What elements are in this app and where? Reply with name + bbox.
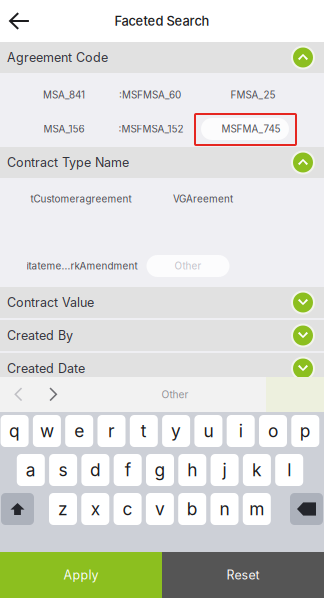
staticText: e [74, 420, 84, 441]
button[interactable]: MSFMA_745 [201, 118, 289, 140]
button[interactable]: n [210, 493, 238, 525]
button[interactable]: o [259, 415, 287, 447]
button[interactable]: Next field [36, 379, 72, 409]
staticText: Reset [226, 567, 259, 582]
staticText: Created Date [7, 361, 85, 376]
button[interactable]: h [178, 454, 206, 486]
staticText: k [252, 459, 262, 480]
staticText: m [249, 498, 264, 519]
button[interactable]: z [49, 493, 77, 525]
staticText: x [91, 498, 100, 519]
staticText: u [203, 420, 213, 441]
staticText: Contract Type Name [7, 155, 129, 170]
button[interactable]: :MSFMSA_60 [110, 84, 190, 106]
button[interactable]: f [114, 454, 142, 486]
button[interactable]: r [97, 415, 125, 447]
staticText: b [187, 498, 198, 519]
button[interactable]: MSA_841 [12, 84, 116, 106]
staticText: Faceted Search [114, 13, 209, 29]
button[interactable]: Other [146, 255, 229, 277]
staticText: Contract Value [7, 295, 94, 310]
staticText: :MSFMSA_152 [118, 123, 183, 135]
staticText: y [171, 420, 181, 441]
button[interactable]: Contract Type Name [0, 147, 324, 178]
button[interactable]: u [194, 415, 222, 447]
button[interactable]: Reset [162, 552, 324, 598]
button[interactable]: FMSA_25 [207, 84, 299, 106]
button[interactable]: x [81, 493, 109, 525]
staticText: o [268, 420, 278, 441]
button[interactable]: p [291, 415, 319, 447]
button[interactable]: Apply [0, 552, 162, 598]
staticText: :MSFMSA_60 [119, 89, 181, 101]
staticText: itateme...rkAmendment [26, 260, 137, 272]
staticText: c [123, 498, 133, 519]
staticText: w [40, 420, 54, 441]
staticText: MSFMA_745 [221, 123, 280, 135]
button[interactable]: VGAreement [155, 188, 251, 210]
button[interactable]: tCustomeragreement [11, 188, 151, 210]
button[interactable]: j [211, 454, 239, 486]
button[interactable]: t [130, 415, 158, 447]
button[interactable]: Created By [0, 320, 324, 351]
staticText: Created By [7, 328, 73, 343]
button[interactable]: b [178, 493, 206, 525]
button[interactable]: Created Date [0, 353, 324, 384]
staticText: j [223, 459, 227, 480]
staticText: n [219, 498, 229, 519]
button[interactable]: d [81, 454, 109, 486]
staticText: t [141, 420, 147, 441]
button[interactable]: MSA_156 [12, 118, 116, 140]
button[interactable]: g [146, 454, 174, 486]
staticText: z [58, 498, 68, 519]
button[interactable]: itateme...rkAmendment [12, 255, 152, 277]
staticText: r [108, 420, 115, 441]
button[interactable]: k [243, 454, 271, 486]
button[interactable]: y [162, 415, 190, 447]
button[interactable]: a [17, 454, 45, 486]
button[interactable]: e [65, 415, 93, 447]
button[interactable]: v [146, 493, 174, 525]
staticText: v [155, 498, 165, 519]
staticText: p [300, 420, 311, 441]
staticText: Apply [63, 567, 98, 582]
button[interactable]: c [114, 493, 142, 525]
staticText: g [154, 459, 165, 480]
button[interactable]: m [243, 493, 271, 525]
button[interactable]: q [1, 415, 29, 447]
staticText: Other [161, 388, 188, 401]
staticText: s [59, 459, 68, 480]
staticText: i [239, 420, 243, 441]
staticText: f [125, 459, 131, 480]
button[interactable]: :MSFMSA_152 [111, 118, 191, 140]
button[interactable]: w [33, 415, 61, 447]
button[interactable]: s [49, 454, 77, 486]
button[interactable]: Contract Value [0, 287, 324, 318]
staticText: MSA_841 [43, 89, 85, 101]
staticText: VGAreement [173, 193, 233, 205]
button[interactable]: Back [0, 5, 38, 37]
button[interactable]: i [227, 415, 255, 447]
button[interactable]: Delete [290, 493, 323, 525]
staticText: tCustomeragreement [30, 193, 131, 205]
button[interactable]: Previous field [0, 379, 36, 409]
staticText: Agreement Code [7, 50, 108, 65]
staticText: FMSA_25 [230, 89, 275, 101]
button[interactable]: l [275, 454, 303, 486]
staticText: a [26, 459, 36, 480]
button[interactable]: Agreement Code [0, 42, 324, 73]
staticText: d [90, 459, 101, 480]
staticText: h [187, 459, 197, 480]
staticText: MSA_156 [43, 123, 84, 135]
button[interactable]: Shift [1, 493, 34, 525]
staticText: l [287, 459, 291, 480]
staticText: Other [174, 260, 201, 272]
staticText: q [9, 420, 20, 441]
